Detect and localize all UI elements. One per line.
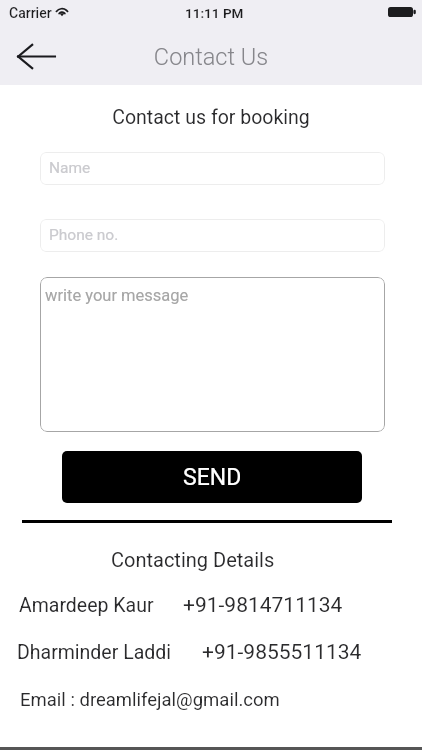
staticText: +91-9814711134 (183, 593, 343, 618)
button[interactable]: write your message (40, 277, 385, 432)
staticText: Contacting Details (111, 548, 275, 571)
staticText: Contact us for booking (0, 106, 422, 129)
staticText: Contact Us (0, 43, 422, 71)
staticText: 11:11 PM (185, 5, 244, 21)
staticText: Carrier (9, 5, 52, 21)
staticText: Phone no. (49, 226, 119, 244)
staticText: write your message (45, 286, 189, 305)
button[interactable]: Name (40, 152, 385, 185)
staticText: Amardeep Kaur (19, 594, 154, 617)
button[interactable]: Back (8, 35, 64, 77)
staticText: Dharminder Laddi (17, 641, 171, 664)
button[interactable]: Phone no. (40, 219, 385, 252)
staticText: +91-9855511134 (202, 640, 362, 665)
staticText: Email : dreamlifejal@gmail.com (20, 689, 280, 711)
staticText: Name (49, 159, 91, 177)
staticText: SEND (183, 464, 242, 491)
button[interactable]: SEND (62, 451, 362, 503)
